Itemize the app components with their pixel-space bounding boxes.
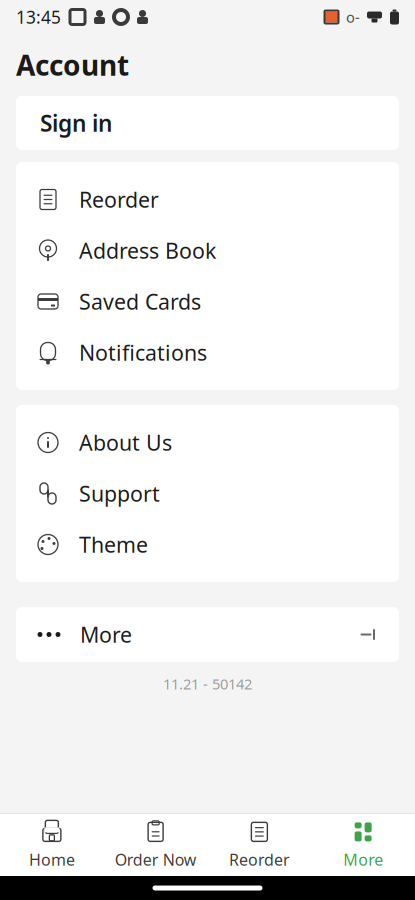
- staticText: More: [343, 849, 383, 870]
- staticText: About Us: [79, 428, 172, 457]
- staticText: Support: [79, 479, 160, 508]
- button[interactable]: Order Now: [104, 814, 208, 876]
- staticText: Home: [29, 849, 75, 870]
- staticText: Address Book: [79, 236, 216, 265]
- staticText: Notifications: [79, 338, 207, 367]
- staticText: Order Now: [115, 849, 197, 870]
- staticText: Saved Cards: [79, 287, 201, 316]
- button[interactable]: More: [16, 607, 399, 662]
- staticText: Reorder: [79, 185, 159, 214]
- button[interactable]: Address Book: [16, 225, 399, 276]
- button[interactable]: More: [311, 814, 415, 876]
- button[interactable]: Saved Cards: [16, 276, 399, 327]
- staticText: o-: [346, 7, 360, 27]
- button[interactable]: Home: [0, 814, 104, 876]
- button[interactable]: About Us: [16, 417, 399, 468]
- staticText: Sign in: [40, 108, 112, 138]
- staticText: Theme: [79, 530, 148, 559]
- button[interactable]: Theme: [16, 519, 399, 570]
- staticText: 13:45: [16, 5, 61, 28]
- button[interactable]: Notifications: [16, 327, 399, 378]
- staticText: 11.21 - 50142: [163, 674, 252, 693]
- staticText: Reorder: [229, 849, 290, 870]
- staticText: Account: [16, 46, 129, 84]
- button[interactable]: Reorder: [207, 814, 311, 876]
- staticText: More: [80, 620, 132, 649]
- button[interactable]: Reorder: [16, 174, 399, 225]
- button[interactable]: Sign in: [16, 96, 399, 150]
- button[interactable]: Support: [16, 468, 399, 519]
